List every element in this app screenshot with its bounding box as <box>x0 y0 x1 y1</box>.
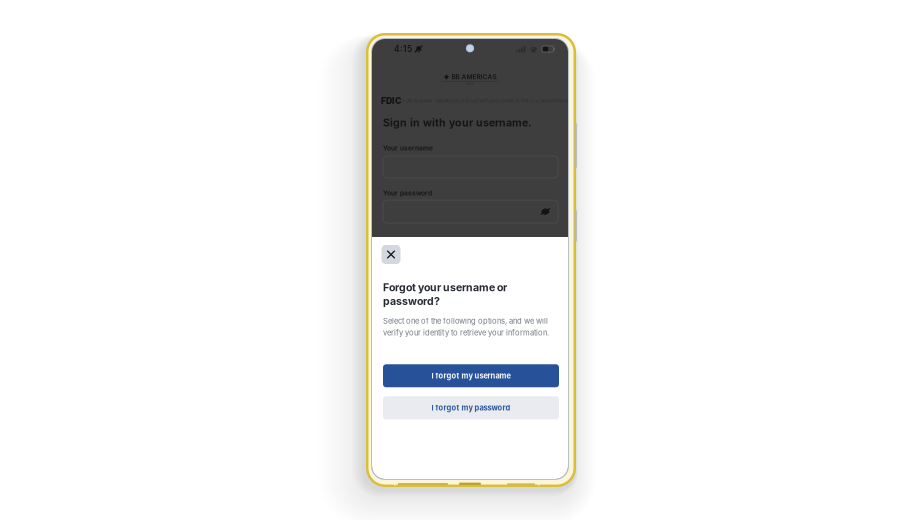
button[interactable]: I forgot my password <box>383 396 559 419</box>
staticText: Bank <box>466 81 474 86</box>
staticText: Sign in with your username. <box>383 116 532 129</box>
staticText: Your username <box>383 144 433 152</box>
staticText: 4:15 <box>394 44 412 54</box>
staticText: FDIC <box>381 96 401 106</box>
staticText: I forgot my password <box>431 403 510 412</box>
staticText: Select one of the following options, and… <box>383 316 549 337</box>
button[interactable]: Close <box>381 245 400 264</box>
staticText: I forgot my username <box>431 371 510 380</box>
staticText: BB AMERICAS <box>451 73 496 81</box>
staticText: FDIC-Insured - Backed by the full faith … <box>403 98 569 104</box>
staticText: Your password <box>383 189 432 197</box>
button[interactable]: I forgot my username <box>383 364 559 387</box>
staticText: Forgot your username or password? <box>383 281 507 307</box>
